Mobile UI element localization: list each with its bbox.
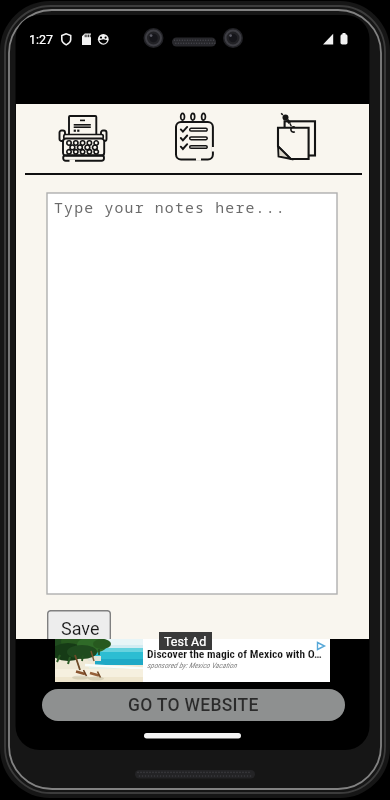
button[interactable]	[55, 109, 111, 165]
staticText: GO TO WEBSITE	[128, 695, 259, 716]
staticText: Save	[61, 618, 100, 639]
staticText: 1:27	[29, 32, 54, 47]
staticText: Discover the magic of Mexico with O…	[147, 647, 322, 660]
button[interactable]: Save	[47, 610, 111, 639]
button[interactable]: Discover the magic of Mexico with O…	[55, 639, 330, 682]
staticText: Test Ad	[164, 634, 207, 649]
button[interactable]	[268, 109, 324, 165]
button[interactable]: Type your notes here...	[47, 193, 337, 594]
staticText: Type your notes here...	[54, 197, 286, 217]
button[interactable]: GO TO WEBSITE	[42, 689, 345, 721]
button[interactable]	[166, 109, 222, 165]
staticText: sponsored by: Mexico Vacation	[147, 661, 237, 670]
